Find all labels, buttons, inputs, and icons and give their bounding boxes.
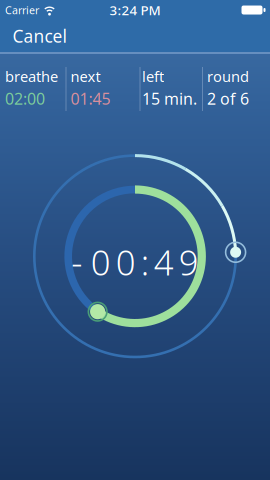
staticText: - — [71, 239, 82, 285]
staticText: Carrier — [5, 3, 39, 17]
button[interactable]: Cancel — [0, 20, 76, 52]
staticText: 9 — [179, 239, 199, 285]
staticText: next — [70, 66, 100, 86]
staticText: Cancel — [12, 24, 66, 47]
staticText: 0 — [91, 239, 111, 285]
staticText: 15 min. — [142, 88, 197, 109]
staticText: 3:24 PM — [109, 1, 160, 19]
staticText: 2 of 6 — [207, 88, 249, 109]
staticText: : — [141, 239, 149, 285]
staticText: 4 — [154, 239, 174, 285]
staticText: breathe — [5, 66, 58, 86]
staticText: 02:00 — [5, 88, 45, 109]
staticText: 0 — [116, 239, 136, 285]
staticText: left — [142, 66, 164, 86]
staticText: round — [207, 66, 249, 86]
staticText: 01:45 — [70, 88, 110, 109]
